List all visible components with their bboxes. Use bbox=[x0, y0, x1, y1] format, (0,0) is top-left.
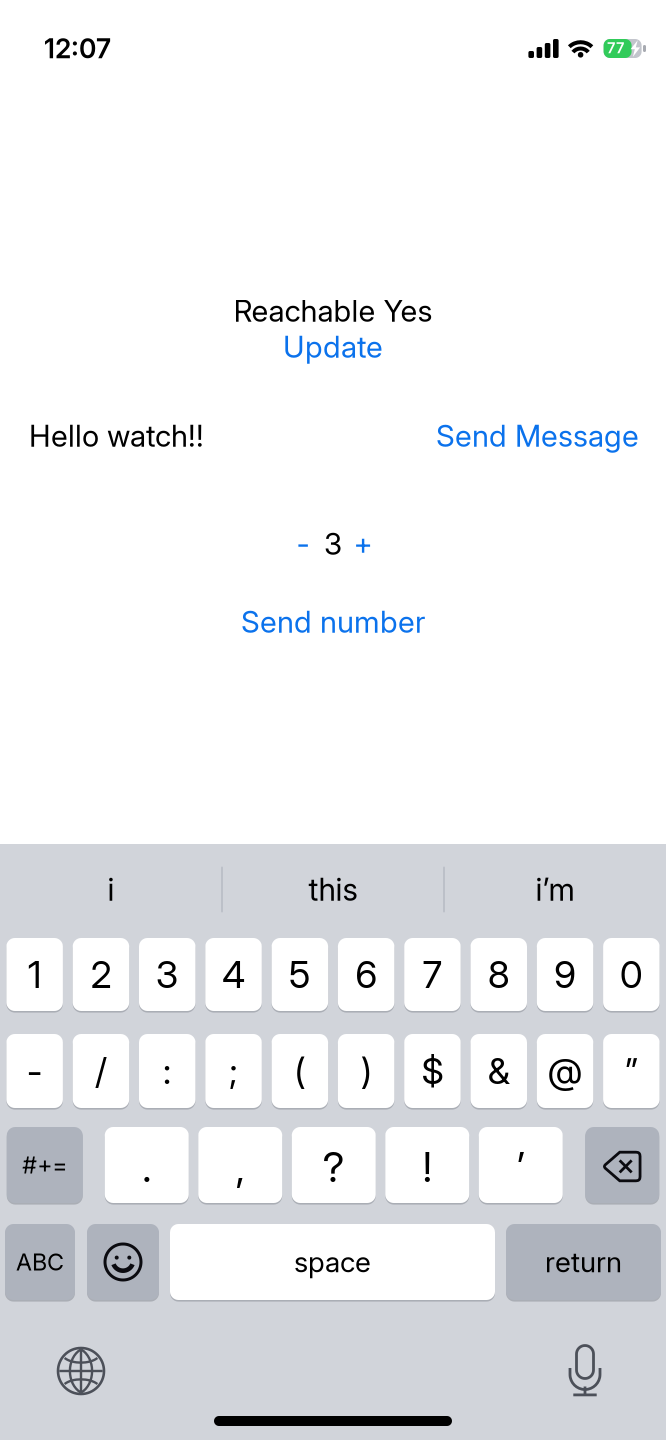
button[interactable]: $ bbox=[404, 1034, 461, 1108]
staticText: . bbox=[142, 1142, 151, 1192]
staticText: Reachable Yes bbox=[233, 293, 432, 329]
staticText: $ bbox=[421, 1049, 443, 1093]
staticText: Send number bbox=[241, 604, 425, 640]
staticText: this bbox=[308, 871, 357, 908]
staticText: 2 bbox=[90, 952, 111, 997]
button[interactable]: 8 bbox=[470, 938, 527, 1011]
button[interactable]: i’m bbox=[444, 845, 666, 933]
staticText: 3 bbox=[324, 526, 342, 562]
button[interactable]: 5 bbox=[272, 938, 328, 1011]
button[interactable]: this bbox=[222, 845, 444, 933]
button[interactable]: 7 bbox=[404, 938, 461, 1011]
staticText: , bbox=[236, 1142, 245, 1192]
button[interactable]: ( bbox=[272, 1034, 328, 1108]
button[interactable]: i bbox=[0, 845, 222, 933]
staticText: 12:07 bbox=[44, 32, 111, 65]
staticText: return bbox=[545, 1245, 622, 1279]
staticText: 3 bbox=[156, 952, 179, 997]
staticText: i’m bbox=[535, 871, 574, 908]
staticText: ’ bbox=[517, 1142, 525, 1192]
staticText: ! bbox=[423, 1142, 432, 1192]
button[interactable]: - bbox=[6, 1034, 63, 1108]
button[interactable]: Send number bbox=[241, 604, 425, 640]
staticText: 6 bbox=[355, 952, 377, 997]
button[interactable]: , bbox=[198, 1127, 282, 1203]
staticText: - bbox=[296, 526, 309, 562]
button[interactable]: 2 bbox=[73, 938, 129, 1011]
button[interactable]: space bbox=[170, 1224, 495, 1300]
button[interactable]: ” bbox=[603, 1034, 660, 1108]
button[interactable]: + bbox=[348, 526, 378, 562]
staticText: 9 bbox=[554, 952, 576, 997]
staticText: 4 bbox=[222, 952, 245, 997]
button[interactable]: ! bbox=[385, 1127, 469, 1203]
staticText: #+= bbox=[22, 1151, 67, 1179]
button[interactable]: 1 bbox=[6, 938, 63, 1011]
staticText: 77 bbox=[607, 39, 624, 57]
button[interactable]: 9 bbox=[537, 938, 593, 1011]
button[interactable]: @ bbox=[537, 1034, 593, 1108]
button[interactable]: return bbox=[506, 1224, 661, 1300]
staticText: 5 bbox=[289, 952, 311, 997]
staticText: ) bbox=[361, 1049, 372, 1093]
button[interactable]: / bbox=[73, 1034, 129, 1108]
button[interactable]: - bbox=[288, 526, 318, 562]
button[interactable]: #+= bbox=[7, 1127, 83, 1203]
button[interactable]: : bbox=[139, 1034, 195, 1108]
staticText: 8 bbox=[488, 952, 510, 997]
staticText: / bbox=[95, 1049, 107, 1093]
button[interactable]: Next keyboard bbox=[52, 1342, 110, 1400]
staticText: ” bbox=[625, 1049, 638, 1093]
button[interactable]: Update bbox=[283, 329, 383, 365]
staticText: Update bbox=[283, 329, 383, 365]
button[interactable]: ? bbox=[292, 1127, 376, 1203]
button[interactable]: Send Message bbox=[436, 418, 639, 454]
staticText: - bbox=[27, 1049, 43, 1093]
staticText: i bbox=[107, 871, 114, 908]
staticText: : bbox=[163, 1049, 172, 1093]
button[interactable]: Emoji bbox=[87, 1224, 159, 1300]
staticText: ( bbox=[294, 1049, 305, 1093]
button[interactable]: ’ bbox=[479, 1127, 563, 1203]
button[interactable]: Delete bbox=[585, 1127, 659, 1203]
button[interactable]: & bbox=[470, 1034, 527, 1108]
staticText: Send Message bbox=[436, 418, 639, 454]
staticText: @ bbox=[547, 1049, 582, 1093]
button[interactable]: ABC bbox=[5, 1224, 75, 1300]
staticText: & bbox=[488, 1049, 510, 1093]
staticText: 0 bbox=[620, 952, 643, 997]
staticText: ABC bbox=[16, 1248, 64, 1276]
button[interactable]: 0 bbox=[603, 938, 660, 1011]
staticText: ? bbox=[323, 1142, 345, 1192]
staticText: + bbox=[353, 526, 372, 562]
button[interactable]: ) bbox=[338, 1034, 394, 1108]
button[interactable]: 6 bbox=[338, 938, 394, 1011]
staticText: Hello watch!! bbox=[29, 418, 204, 454]
staticText: 7 bbox=[422, 952, 442, 997]
staticText: ; bbox=[229, 1049, 238, 1093]
button[interactable]: 3 bbox=[139, 938, 195, 1011]
staticText: space bbox=[294, 1245, 371, 1279]
button[interactable]: 4 bbox=[205, 938, 262, 1011]
button[interactable]: Dictation bbox=[556, 1342, 614, 1400]
button[interactable]: ; bbox=[205, 1034, 262, 1108]
button[interactable]: . bbox=[105, 1127, 189, 1203]
staticText: 1 bbox=[28, 952, 42, 997]
